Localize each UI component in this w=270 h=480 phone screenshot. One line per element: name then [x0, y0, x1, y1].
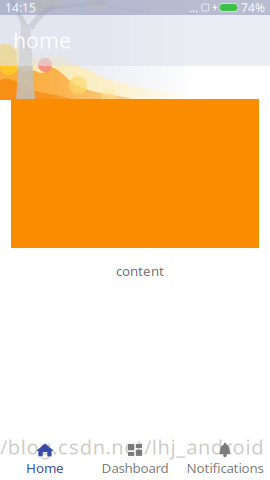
staticText: 14:15: [5, 0, 36, 15]
button[interactable]: Dashboard: [90, 436, 180, 480]
staticText: Dashboard: [101, 459, 168, 477]
staticText: content: [116, 262, 164, 280]
staticText: Notifications: [186, 459, 263, 477]
staticText: home: [13, 26, 71, 54]
button[interactable]: Home: [0, 436, 90, 480]
staticText: 74%: [241, 0, 265, 15]
staticText: …: [189, 0, 198, 15]
staticText: Home: [26, 459, 64, 477]
staticText: /blog.csdn.net/lhj_android: [0, 433, 263, 460]
button[interactable]: Notifications: [180, 436, 270, 480]
